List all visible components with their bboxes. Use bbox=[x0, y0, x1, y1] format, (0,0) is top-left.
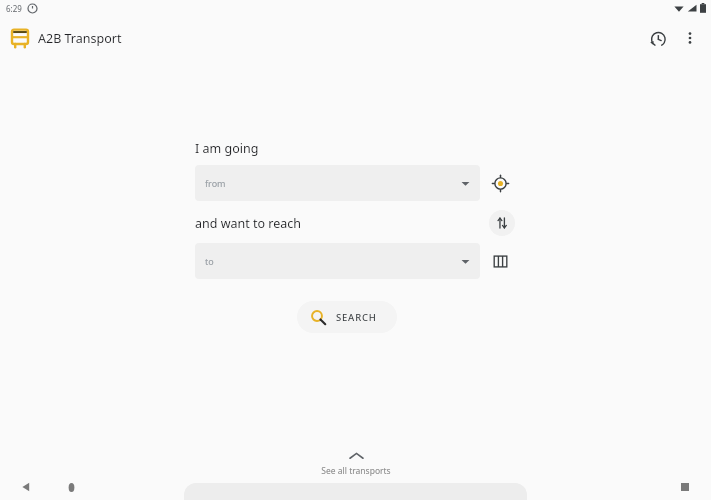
staticText: See all transports bbox=[321, 465, 391, 477]
staticText: to bbox=[205, 255, 214, 267]
button[interactable]: Home bbox=[59, 475, 83, 499]
button[interactable]: See all transports bbox=[291, 450, 421, 479]
staticText: from bbox=[205, 177, 226, 189]
staticText: SEARCH bbox=[336, 311, 377, 324]
button[interactable]: from bbox=[195, 165, 480, 201]
button[interactable]: More options bbox=[675, 23, 705, 53]
button[interactable]: Pick destination on map bbox=[486, 247, 514, 275]
button[interactable]: Swap origin and destination bbox=[489, 210, 515, 236]
button[interactable]: to bbox=[195, 243, 480, 279]
button[interactable]: Back bbox=[14, 475, 38, 499]
staticText: A2B Transport bbox=[38, 30, 122, 47]
staticText: I am going bbox=[195, 140, 259, 157]
button[interactable]: Use my location bbox=[486, 169, 514, 197]
button[interactable]: History bbox=[641, 22, 673, 54]
button[interactable]: SEARCH bbox=[297, 301, 397, 333]
button[interactable]: A2B Transport bbox=[8, 24, 124, 52]
staticText: 6:29 bbox=[6, 3, 22, 14]
button[interactable]: Show from suggestions bbox=[458, 176, 472, 190]
button[interactable]: Show destination suggestions bbox=[458, 254, 472, 268]
button[interactable]: Recent apps bbox=[673, 475, 697, 499]
staticText: and want to reach bbox=[195, 215, 489, 232]
